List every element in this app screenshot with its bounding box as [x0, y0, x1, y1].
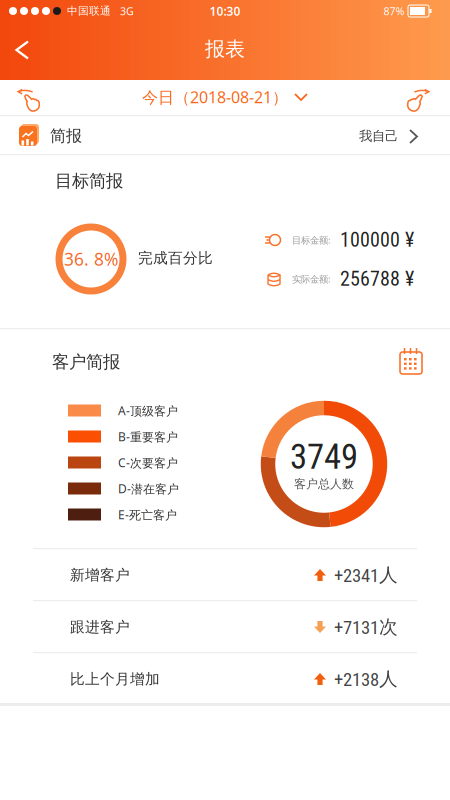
staticText: 客户简报 — [52, 351, 120, 373]
staticText: C-次要客户 — [118, 454, 178, 470]
staticText: B-重要客户 — [118, 428, 178, 444]
staticText: 简报 — [50, 126, 82, 146]
staticText: 报表 — [205, 37, 245, 61]
staticText: +2341人 — [334, 563, 398, 587]
staticText: 目标简报 — [55, 170, 123, 192]
staticText: 目标金额: — [292, 234, 331, 246]
staticText: 比上个月增加 — [70, 670, 160, 688]
staticText: 100000 ¥ — [340, 228, 414, 252]
button[interactable]: Choose date — [142, 86, 308, 108]
staticText: D-潜在客户 — [118, 480, 179, 496]
staticText: 36. 8% — [64, 247, 118, 270]
staticText: 我自己 — [359, 128, 398, 144]
staticText: 256788 ¥ — [340, 267, 414, 291]
staticText: +2138人 — [334, 667, 398, 691]
button[interactable]: Next day — [403, 81, 437, 115]
staticText: E-死亡客户 — [118, 506, 177, 522]
button[interactable]: Back — [4, 32, 40, 68]
staticText: +7131次 — [334, 615, 398, 639]
staticText: A-顶级客户 — [118, 402, 178, 418]
staticText: 客户总人数 — [294, 477, 354, 491]
staticText: 新增客户 — [70, 566, 130, 584]
staticText: 今日（2018-08-21） — [142, 86, 288, 108]
button[interactable]: Previous day — [11, 81, 45, 115]
button[interactable]: Calendar — [396, 345, 426, 375]
staticText: 10:30 — [209, 3, 240, 19]
staticText: 87% — [383, 4, 404, 18]
staticText: 中国联通 — [67, 4, 111, 17]
button[interactable]: 简报 — [0, 117, 450, 155]
staticText: 完成百分比 — [138, 249, 213, 267]
staticText: 跟进客户 — [70, 618, 130, 636]
staticText: 3749 — [290, 437, 358, 477]
staticText: 3G — [120, 4, 134, 18]
staticText: 实际金额: — [292, 273, 331, 285]
